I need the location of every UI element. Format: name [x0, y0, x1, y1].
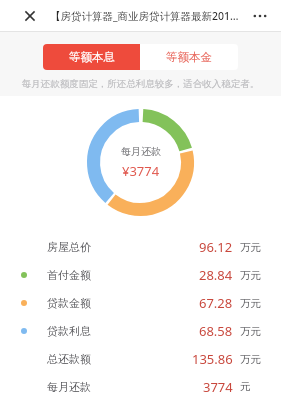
staticText: ¥3774: [122, 162, 160, 180]
staticText: 67.28: [199, 294, 233, 312]
staticText: 元: [240, 380, 251, 393]
button[interactable]: 每月还款: [0, 373, 281, 400]
staticText: 等额本息: [69, 50, 115, 64]
staticText: 68.58: [199, 322, 233, 340]
staticText: 3774: [203, 378, 233, 396]
button[interactable]: 总还款额: [0, 345, 281, 373]
staticText: 【房贷计算器_商业房贷计算器最新201…: [50, 9, 239, 23]
button[interactable]: 等额本息: [43, 44, 140, 70]
staticText: 万元: [240, 241, 261, 254]
staticText: 房屋总价: [47, 240, 91, 254]
staticText: 每月还款: [47, 380, 91, 394]
staticText: 135.86: [192, 350, 233, 368]
staticText: 28.84: [199, 266, 233, 284]
staticText: 每月还款: [121, 145, 161, 158]
button[interactable]: 贷款金额: [0, 289, 281, 317]
staticText: 万元: [240, 297, 261, 310]
staticText: 万元: [240, 353, 261, 366]
button[interactable]: 房屋总价: [0, 233, 281, 261]
staticText: 首付金额: [47, 268, 91, 282]
button[interactable]: More options: [249, 5, 271, 27]
staticText: 贷款金额: [47, 296, 91, 310]
staticText: 总还款额: [47, 352, 91, 366]
button[interactable]: 等额本金: [140, 44, 238, 70]
button[interactable]: 首付金额: [0, 261, 281, 289]
button[interactable]: Close: [20, 6, 40, 26]
staticText: 万元: [240, 269, 261, 282]
staticText: 贷款利息: [47, 324, 91, 338]
staticText: 万元: [240, 325, 261, 338]
staticText: 等额本金: [166, 50, 212, 64]
staticText: 96.12: [199, 238, 233, 256]
staticText: 每月还款额度固定，所还总利息较多，适合收入稳定者。: [8, 78, 273, 90]
button[interactable]: 贷款利息: [0, 317, 281, 345]
